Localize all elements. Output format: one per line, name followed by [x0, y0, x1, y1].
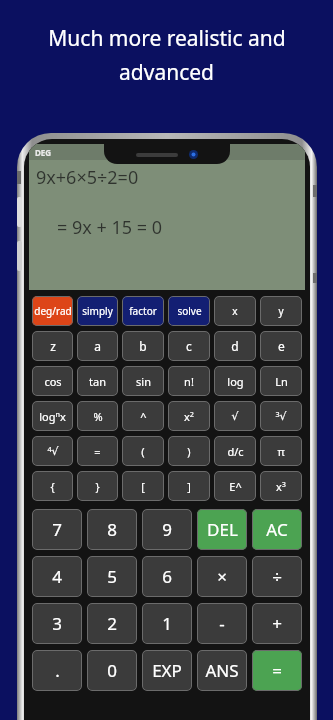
button[interactable]: + [252, 603, 302, 644]
staticText: x3 [276, 479, 286, 494]
button[interactable]: 5 [87, 556, 137, 597]
staticText: DEG [35, 147, 52, 158]
button[interactable]: 3 [32, 603, 82, 644]
button[interactable]: % [77, 401, 118, 431]
button[interactable]: 8 [87, 509, 137, 550]
button[interactable]: solve [168, 296, 210, 326]
button[interactable]: π [260, 436, 302, 466]
button[interactable]: y [260, 296, 302, 326]
button[interactable]: 7 [32, 509, 82, 550]
staticText: π [277, 444, 285, 459]
staticText: a [94, 338, 101, 354]
button[interactable]: z [32, 331, 73, 361]
button[interactable]: 0 [87, 650, 137, 691]
staticText: 3√ [275, 409, 287, 423]
staticText: x [232, 304, 238, 318]
staticText: y [278, 304, 284, 318]
staticText: = 9x + 15 = 0 [57, 215, 162, 240]
button[interactable]: ANS [197, 650, 247, 691]
staticText: ANS [205, 659, 239, 682]
button[interactable]: log [214, 366, 256, 396]
staticText: 1 [162, 612, 172, 635]
button[interactable]: r4 [32, 436, 73, 466]
button[interactable]: cos [32, 366, 73, 396]
button[interactable]: = [77, 436, 118, 466]
button[interactable]: Ln [260, 366, 302, 396]
staticText: Ln [275, 374, 288, 389]
button[interactable]: [ [122, 471, 164, 501]
button[interactable]: x2 [168, 401, 210, 431]
button[interactable]: E^ [214, 471, 256, 501]
staticText: × [217, 565, 227, 588]
button[interactable]: 2 [87, 603, 137, 644]
button[interactable]: DEL [197, 509, 247, 550]
button[interactable]: e [260, 331, 302, 361]
staticText: ] [187, 479, 191, 494]
button[interactable]: 9 [142, 509, 192, 550]
staticText: x2 [184, 409, 194, 424]
button[interactable]: a [77, 331, 118, 361]
staticText: ÷ [272, 565, 282, 588]
button[interactable]: ^ [122, 401, 164, 431]
button[interactable]: n! [168, 366, 210, 396]
staticText: cos [44, 374, 62, 389]
staticText: = [94, 444, 101, 459]
staticText: b [139, 338, 147, 354]
button[interactable]: d/c [214, 436, 256, 466]
staticText: - [219, 612, 225, 635]
staticText: [ [141, 479, 145, 494]
staticText: ^ [140, 409, 147, 424]
staticText: . [55, 659, 60, 682]
button[interactable]: 4 [32, 556, 82, 597]
button[interactable]: { [32, 471, 73, 501]
button[interactable]: factor [122, 296, 164, 326]
button[interactable]: b [122, 331, 164, 361]
staticText: EXP [152, 659, 182, 682]
button[interactable]: d [214, 331, 256, 361]
staticText: } [95, 479, 100, 494]
staticText: 8 [107, 518, 117, 541]
staticText: n! [184, 374, 194, 389]
button[interactable]: } [77, 471, 118, 501]
staticText: 7 [52, 518, 62, 541]
button[interactable]: × [197, 556, 247, 597]
button[interactable]: x [214, 296, 256, 326]
staticText: 2 [107, 612, 117, 635]
staticText: advanced [119, 58, 214, 87]
button[interactable]: EXP [142, 650, 192, 691]
staticText: Much more realistic and [48, 24, 286, 53]
button[interactable]: sin [122, 366, 164, 396]
staticText: factor [129, 304, 157, 318]
button[interactable]: 6 [142, 556, 192, 597]
staticText: e [278, 338, 285, 354]
button[interactable]: - [197, 603, 247, 644]
button[interactable]: r3 [260, 401, 302, 431]
button[interactable]: logNx [32, 401, 73, 431]
button[interactable]: x3 [260, 471, 302, 501]
button[interactable]: c [168, 331, 210, 361]
staticText: 3 [52, 612, 62, 635]
button[interactable]: ÷ [252, 556, 302, 597]
button[interactable]: ( [122, 436, 164, 466]
staticText: √ [231, 410, 239, 423]
button[interactable]: tan [77, 366, 118, 396]
staticText: tan [89, 374, 106, 389]
staticText: 9 [162, 518, 172, 541]
button[interactable]: ) [168, 436, 210, 466]
staticText: DEL [207, 518, 238, 541]
button[interactable]: ] [168, 471, 210, 501]
staticText: d/c [227, 444, 244, 459]
staticText: sin [136, 374, 151, 389]
staticText: d [231, 338, 239, 354]
button[interactable]: 1 [142, 603, 192, 644]
button[interactable]: √ [214, 401, 256, 431]
staticText: z [50, 338, 56, 354]
button[interactable]: deg/rad [32, 296, 73, 326]
button[interactable]: . [32, 650, 82, 691]
button[interactable]: AC [252, 509, 302, 550]
staticText: lognx [39, 409, 66, 424]
staticText: = [272, 659, 282, 682]
button[interactable]: simply [77, 296, 118, 326]
button[interactable]: = [252, 650, 302, 691]
staticText: 9x+6×5÷2=0 [36, 165, 139, 190]
